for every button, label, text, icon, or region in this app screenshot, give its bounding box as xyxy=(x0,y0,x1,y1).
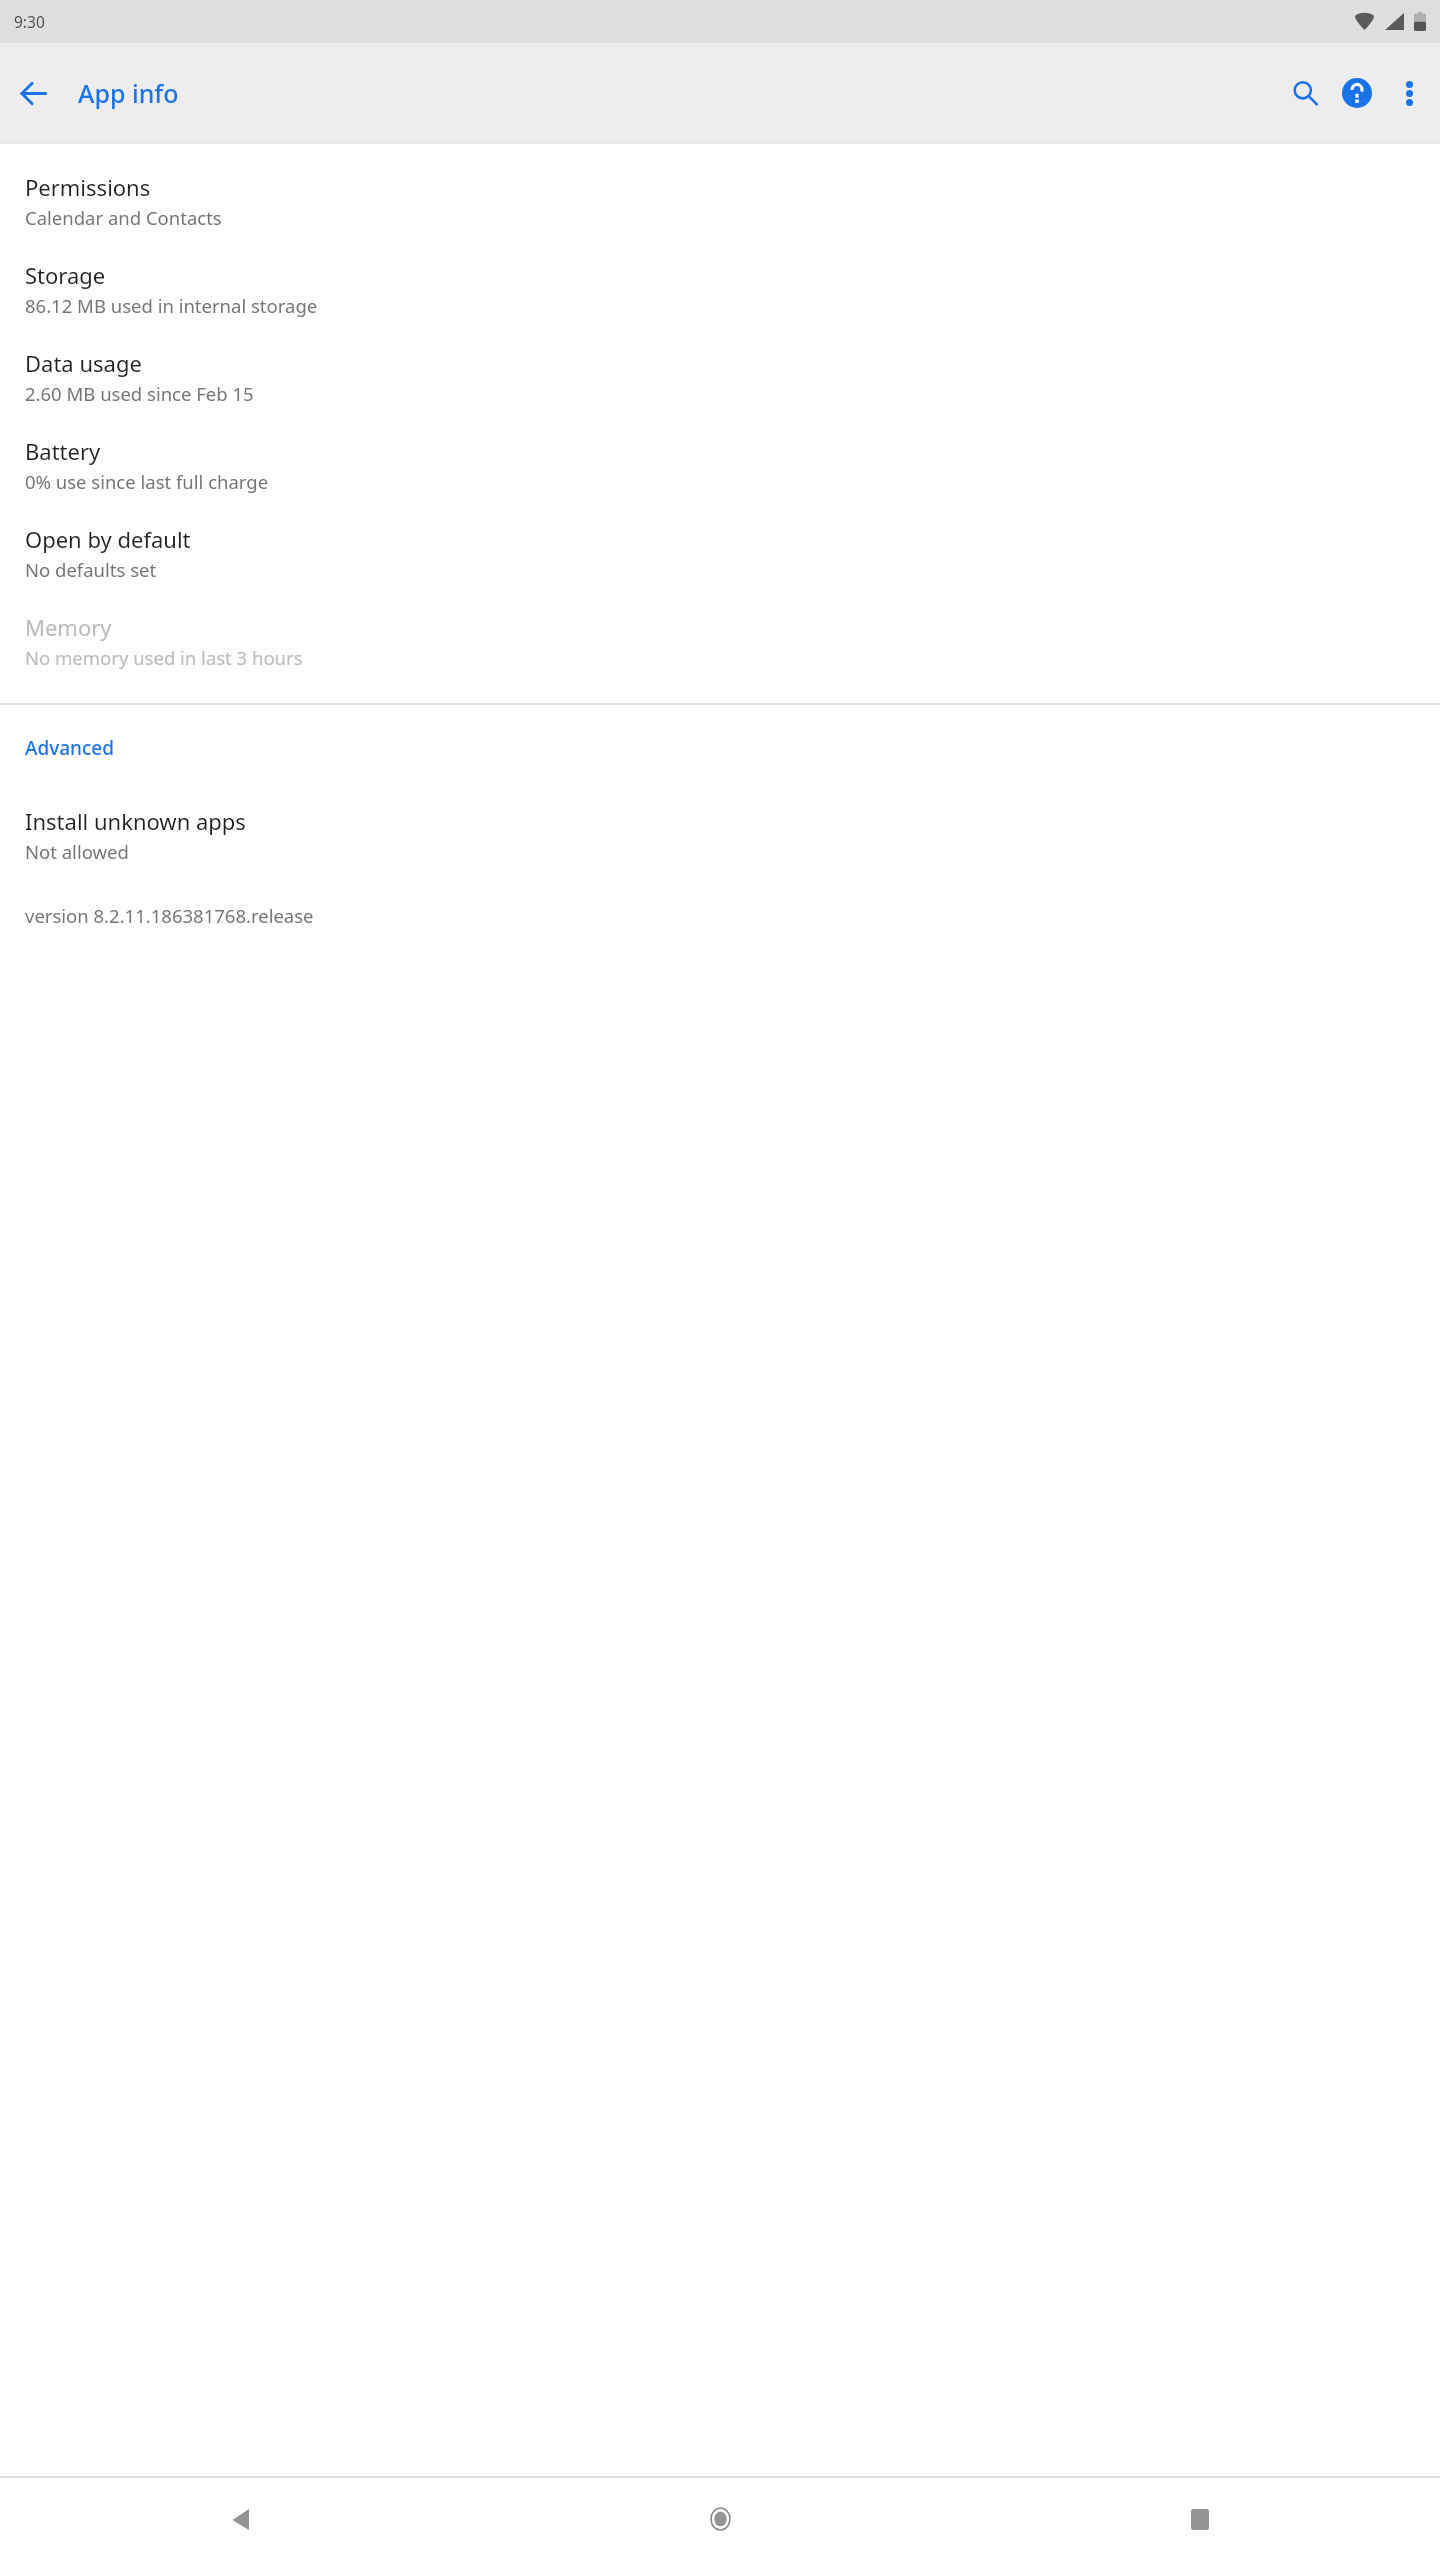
button[interactable]: Storage xyxy=(0,245,1440,333)
button[interactable]: Home xyxy=(480,2478,960,2560)
button[interactable]: Memory xyxy=(0,597,1440,685)
staticText: Data usage xyxy=(25,348,142,378)
staticText: 86.12 MB used in internal storage xyxy=(25,293,318,318)
button[interactable]: Battery xyxy=(0,421,1440,509)
staticText: Calendar and Contacts xyxy=(25,205,222,230)
button[interactable]: Install unknown apps xyxy=(0,791,1440,879)
button[interactable]: More options xyxy=(1385,69,1433,117)
button[interactable]: Open by default xyxy=(0,509,1440,597)
button[interactable]: Search xyxy=(1281,69,1329,117)
staticText: Not allowed xyxy=(25,839,129,864)
staticText: Open by default xyxy=(25,524,191,554)
button[interactable]: Back xyxy=(9,69,57,117)
staticText: App info xyxy=(78,76,179,110)
button[interactable]: Help xyxy=(1333,69,1381,117)
button[interactable]: Advanced xyxy=(0,727,1440,769)
staticText: 2.60 MB used since Feb 15 xyxy=(25,381,254,406)
staticText: No memory used in last 3 hours xyxy=(25,645,303,670)
button[interactable]: Recent apps xyxy=(960,2478,1440,2560)
staticText: No defaults set xyxy=(25,557,157,582)
button[interactable]: Permissions xyxy=(0,157,1440,245)
staticText: 0% use since last full charge xyxy=(25,469,269,494)
staticText: 9:30 xyxy=(14,11,45,32)
staticText: Permissions xyxy=(25,172,151,202)
staticText: Memory xyxy=(25,612,112,642)
staticText: Install unknown apps xyxy=(25,806,246,836)
button[interactable]: Data usage xyxy=(0,333,1440,421)
staticText: Storage xyxy=(25,260,106,290)
staticText: version 8.2.11.186381768.release xyxy=(25,903,314,928)
staticText: Advanced xyxy=(25,735,115,761)
staticText: Battery xyxy=(25,436,101,466)
button[interactable]: Back xyxy=(0,2478,480,2560)
